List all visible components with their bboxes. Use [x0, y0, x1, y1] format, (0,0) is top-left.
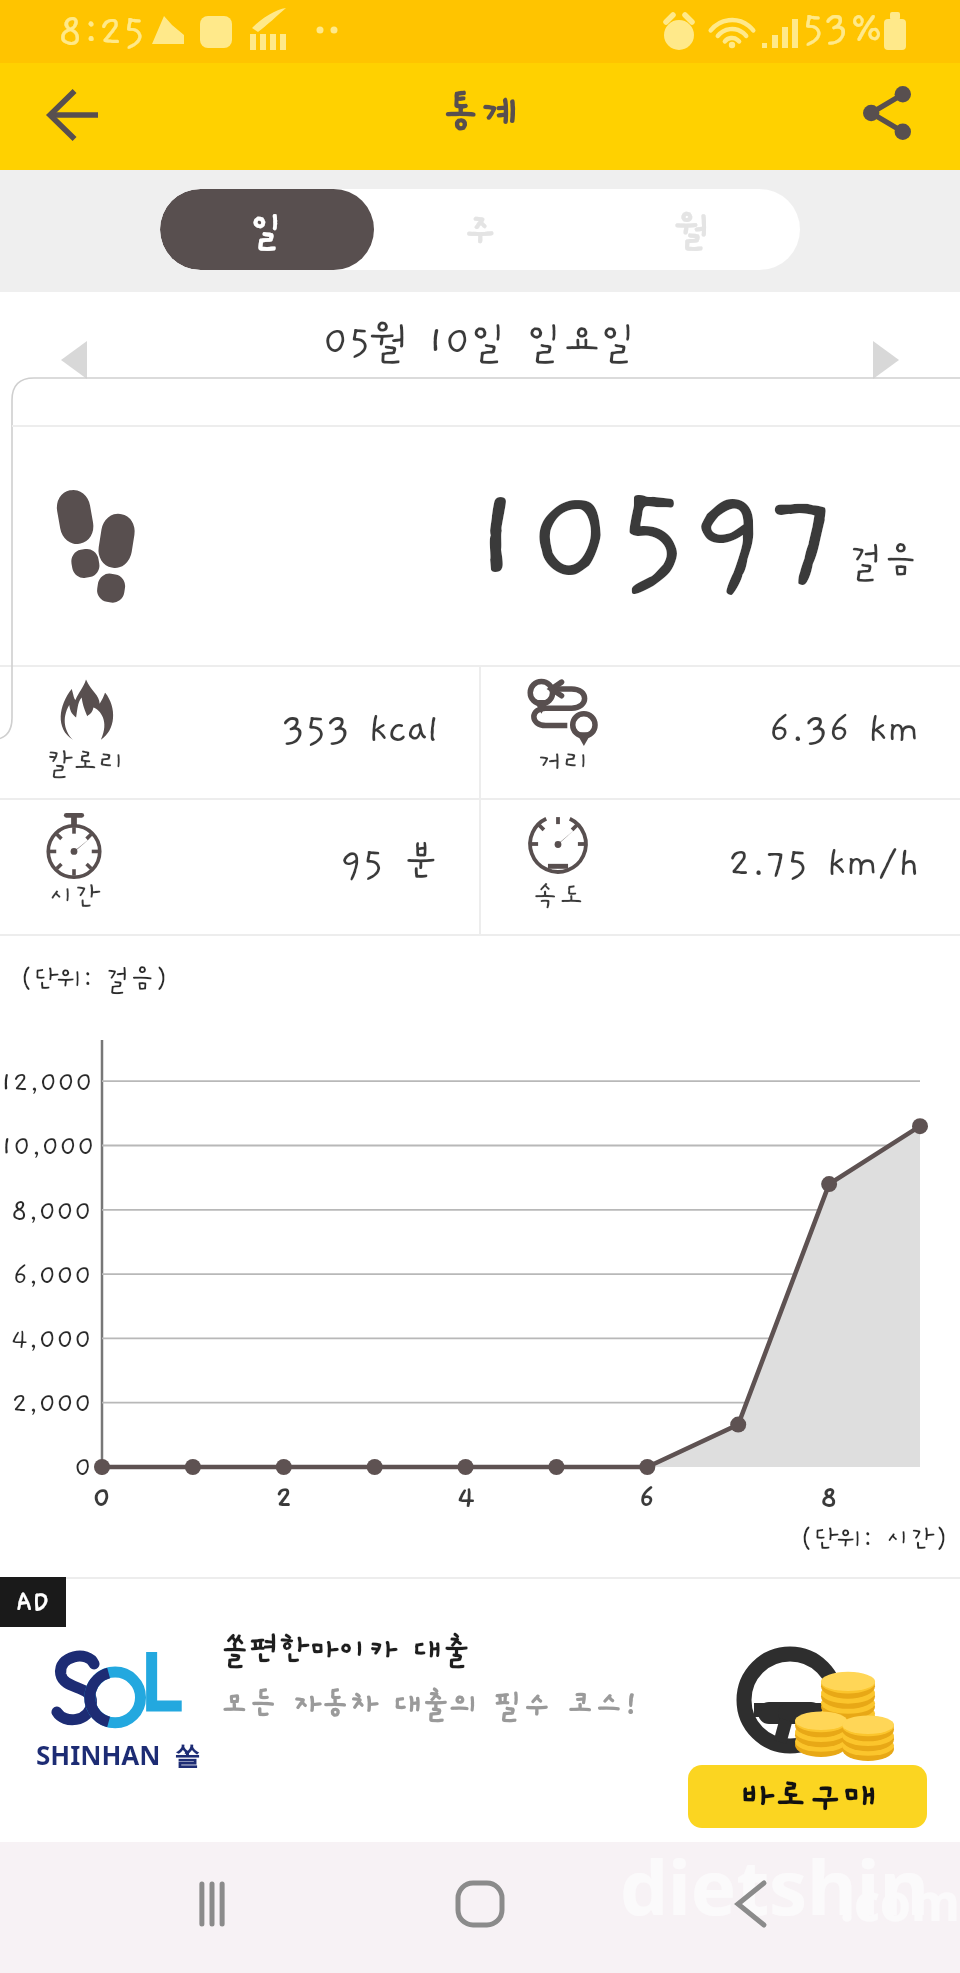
- staticText: 모든 자동차 대출의 필수 코스!: [220, 1687, 639, 1722]
- button[interactable]: Back: [28, 69, 120, 161]
- staticText: 2.75 km/h: [728, 842, 920, 886]
- staticText: .com: [840, 1868, 960, 1936]
- button[interactable]: 10597: [0, 427, 960, 665]
- staticText: 속도: [532, 881, 585, 913]
- staticText: 8,000: [11, 1196, 92, 1227]
- staticText: AD: [16, 1587, 50, 1617]
- button[interactable]: 시간: [0, 800, 479, 934]
- button[interactable]: 바로구매: [688, 1765, 927, 1828]
- staticText: 10,000: [0, 1131, 92, 1162]
- staticText: SHINHAN 쏠: [36, 1737, 201, 1773]
- staticText: 칼로리: [46, 747, 125, 779]
- staticText: 거리: [537, 747, 590, 779]
- button[interactable]: 칼로리: [0, 667, 479, 798]
- staticText: 0: [74, 1452, 92, 1483]
- button[interactable]: Previous day: [40, 326, 108, 394]
- staticText: 2: [264, 1481, 304, 1515]
- staticText: 10597: [467, 462, 841, 614]
- staticText: 시간: [48, 881, 101, 913]
- staticText: 4: [446, 1481, 486, 1515]
- staticText: 8: [809, 1481, 849, 1515]
- staticText: 0: [82, 1481, 122, 1515]
- staticText: 주: [463, 209, 498, 251]
- button[interactable]: Share: [841, 67, 933, 159]
- button[interactable]: Back: [703, 1856, 799, 1952]
- staticText: 6.36 km: [769, 708, 920, 752]
- staticText: 걸음: [849, 540, 918, 582]
- button[interactable]: 일: [160, 189, 374, 270]
- button[interactable]: 월: [587, 189, 800, 270]
- staticText: (단위: 시간): [800, 1524, 948, 1554]
- staticText: 353 kcal: [282, 708, 439, 752]
- button[interactable]: 속도: [481, 800, 960, 934]
- staticText: 쏠편한마이카 대출: [220, 1633, 472, 1669]
- staticText: (단위: 걸음): [20, 964, 168, 994]
- staticText: 일: [250, 209, 285, 251]
- staticText: 2,000: [11, 1388, 92, 1419]
- button[interactable]: Recents: [164, 1856, 260, 1952]
- button[interactable]: 거리: [481, 667, 960, 798]
- staticText: 월: [676, 209, 711, 251]
- button[interactable]: Next day: [852, 326, 920, 394]
- staticText: 12,000: [0, 1067, 92, 1098]
- staticText: 통계: [441, 91, 520, 139]
- staticText: dietshin: [620, 1834, 929, 1938]
- staticText: 6,000: [12, 1260, 92, 1291]
- button[interactable]: Home: [432, 1856, 528, 1952]
- staticText: 6: [627, 1481, 667, 1515]
- staticText: 53%: [802, 6, 885, 52]
- staticText: 8:25: [58, 9, 146, 55]
- staticText: 95 분: [340, 842, 439, 886]
- staticText: 4,000: [10, 1324, 92, 1355]
- staticText: 바로구매: [739, 1776, 877, 1818]
- button[interactable]: 주: [374, 189, 587, 270]
- staticText: 05월 10일 일요일: [323, 319, 638, 364]
